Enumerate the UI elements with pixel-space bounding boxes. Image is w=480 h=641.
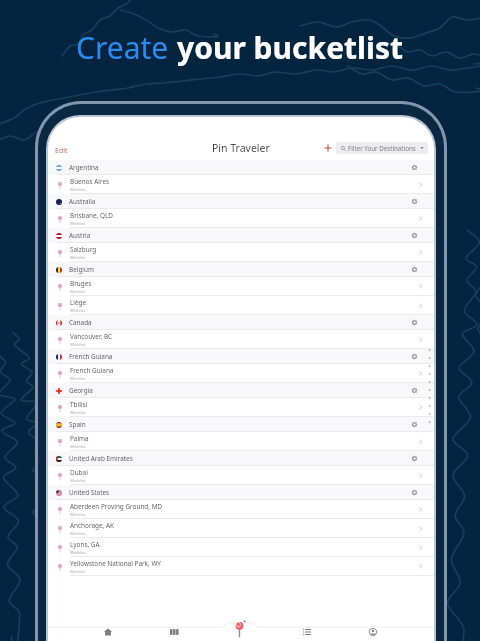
button[interactable]: Anchorage, AK bbox=[48, 519, 434, 538]
staticText: Brisbane, QLD bbox=[70, 211, 113, 220]
button[interactable]: Add pin bbox=[232, 623, 249, 640]
button[interactable]: Lyons, GA bbox=[48, 538, 434, 557]
staticText: Aberdeen Proving Ground, MD bbox=[70, 502, 163, 511]
staticText: Lyons, GA bbox=[70, 540, 100, 549]
staticText: Bruges bbox=[70, 279, 92, 288]
button[interactable]: Buenos Aires bbox=[48, 175, 434, 194]
button[interactable]: Yellowstone National Park, WY bbox=[48, 557, 434, 576]
button[interactable]: Salzburg bbox=[48, 243, 434, 262]
button[interactable]: Australia bbox=[48, 194, 434, 209]
button[interactable]: Brisbane, QLD bbox=[48, 209, 434, 228]
button[interactable]: French Guiana bbox=[48, 349, 434, 364]
staticText: Austria bbox=[69, 231, 91, 240]
button[interactable]: Bruges bbox=[48, 277, 434, 296]
button[interactable]: Palma bbox=[48, 432, 434, 451]
staticText: Wishlist bbox=[70, 289, 86, 295]
staticText: Pin Traveler bbox=[212, 141, 270, 155]
button[interactable]: Aberdeen Proving Ground, MD bbox=[48, 500, 434, 519]
button[interactable]: Home bbox=[99, 623, 116, 640]
staticText: Wishlist bbox=[70, 376, 86, 382]
staticText: United States bbox=[69, 488, 110, 497]
staticText: Anchorage, AK bbox=[70, 521, 114, 530]
staticText: Salzburg bbox=[70, 245, 97, 254]
staticText: Canada bbox=[69, 318, 92, 327]
staticText: Wishlist bbox=[70, 187, 86, 193]
staticText: Spain bbox=[69, 420, 86, 429]
button[interactable]: Add destination bbox=[321, 141, 334, 154]
staticText: Tbilisi bbox=[70, 400, 88, 409]
staticText: Palma bbox=[70, 434, 89, 443]
staticText: Yellowstone National Park, WY bbox=[70, 559, 161, 568]
staticText: Create bbox=[76, 27, 177, 68]
button[interactable]: Map bbox=[165, 623, 182, 640]
staticText: United Arab Emirates bbox=[69, 454, 133, 463]
button[interactable]: Argentina bbox=[48, 160, 434, 175]
staticText: Wishlist bbox=[70, 221, 86, 227]
staticText: Liège bbox=[70, 298, 87, 307]
button[interactable]: Austria bbox=[48, 228, 434, 243]
button[interactable]: Liège bbox=[48, 296, 434, 315]
staticText: Belgium bbox=[69, 265, 94, 274]
button[interactable]: Profile bbox=[364, 623, 381, 640]
staticText: Georgia bbox=[69, 386, 93, 395]
staticText: Wishlist bbox=[70, 308, 86, 314]
button[interactable]: Belgium bbox=[48, 262, 434, 277]
button[interactable]: Tbilisi bbox=[48, 398, 434, 417]
button[interactable]: French Guiana bbox=[48, 364, 434, 383]
staticText: Filter Your Destinations bbox=[348, 144, 416, 152]
button[interactable]: Georgia bbox=[48, 383, 434, 398]
staticText: Wishlist bbox=[70, 410, 86, 416]
staticText: Wishlist bbox=[70, 512, 86, 518]
button[interactable]: List bbox=[298, 623, 315, 640]
staticText: Vancouver, BC bbox=[70, 332, 113, 341]
staticText: Buenos Aires bbox=[70, 177, 110, 186]
staticText: Wishlist bbox=[70, 342, 86, 348]
staticText: French Guiana bbox=[70, 366, 114, 375]
staticText: Wishlist bbox=[70, 255, 86, 261]
staticText: Argentina bbox=[69, 163, 99, 172]
button[interactable]: Dubai bbox=[48, 466, 434, 485]
staticText: Wishlist bbox=[70, 478, 86, 484]
staticText: your bucketlist bbox=[177, 27, 404, 68]
staticText: Wishlist bbox=[70, 550, 86, 556]
button[interactable]: Canada bbox=[48, 315, 434, 330]
button[interactable]: Spain bbox=[48, 417, 434, 432]
button[interactable]: United States bbox=[48, 485, 434, 500]
button[interactable]: United Arab Emirates bbox=[48, 451, 434, 466]
button[interactable]: Edit bbox=[48, 144, 72, 158]
button[interactable]: Vancouver, BC bbox=[48, 330, 434, 349]
staticText: Wishlist bbox=[70, 444, 86, 450]
staticText: Australia bbox=[69, 197, 96, 206]
staticText: Wishlist bbox=[70, 569, 86, 575]
staticText: French Guiana bbox=[69, 352, 113, 361]
button[interactable]: Filter Your Destinations bbox=[336, 142, 428, 154]
staticText: Dubai bbox=[70, 468, 88, 477]
staticText: Wishlist bbox=[70, 531, 86, 537]
